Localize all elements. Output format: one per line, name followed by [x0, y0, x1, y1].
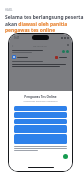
staticText: Selama tes berlangsung peserta akan diaw… [5, 14, 84, 33]
button[interactable] [14, 134, 67, 144]
staticText: ‹ [12, 43, 14, 48]
staticText: HASIL [5, 8, 13, 12]
button[interactable]: WhatsApp [63, 154, 68, 159]
staticText: 9:41 [14, 36, 20, 40]
staticText: cbt.uty.ac.id [33, 44, 47, 47]
button[interactable] [14, 119, 67, 124]
button[interactable] [14, 112, 67, 118]
button[interactable] [14, 106, 67, 111]
staticText: Universitas Teknologi Yogyakarta [9, 100, 72, 103]
button[interactable] [14, 125, 67, 133]
staticText: Pengawas Tes Online [9, 95, 72, 99]
